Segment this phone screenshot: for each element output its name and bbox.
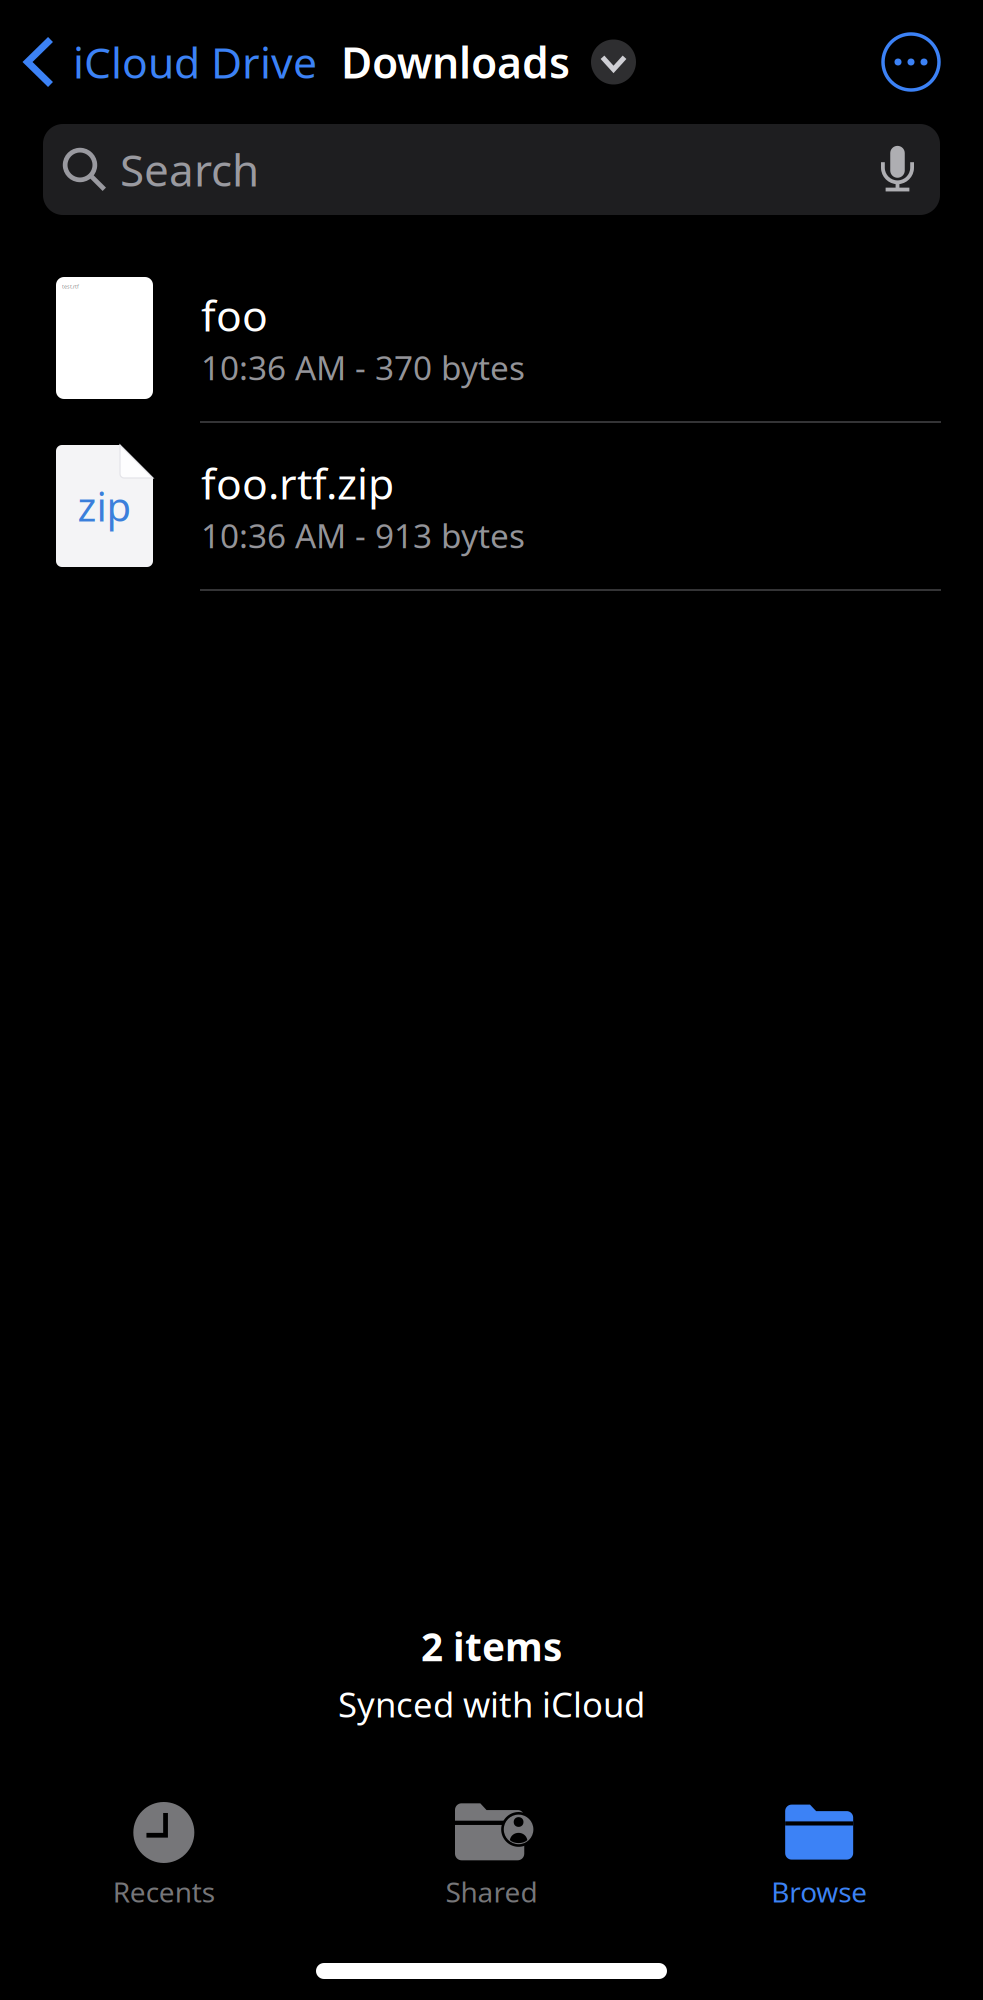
staticText: test.rtf bbox=[62, 283, 79, 290]
staticText: 10:36 AM - 913 bytes bbox=[201, 513, 525, 557]
staticText: Synced with iCloud bbox=[338, 1681, 645, 1727]
staticText: Downloads bbox=[341, 34, 570, 90]
staticText: Browse bbox=[771, 1873, 867, 1910]
staticText: foo.rtf.zip bbox=[201, 454, 394, 511]
button[interactable]: Recents bbox=[0, 1794, 328, 1910]
button[interactable]: iCloud Drive bbox=[0, 16, 317, 108]
button[interactable]: Shared bbox=[328, 1794, 655, 1910]
staticText: Search bbox=[120, 140, 259, 199]
staticText: Shared bbox=[445, 1873, 537, 1910]
staticText: foo bbox=[201, 286, 268, 343]
button[interactable]: Folder actions bbox=[591, 39, 636, 84]
staticText: 2 items bbox=[421, 1621, 562, 1672]
staticText: iCloud Drive bbox=[73, 34, 317, 90]
button[interactable]: More bbox=[883, 34, 939, 90]
button[interactable]: Dictate bbox=[881, 145, 914, 193]
button[interactable]: zip bbox=[0, 423, 983, 591]
staticText: Recents bbox=[113, 1873, 215, 1910]
button[interactable]: Browse bbox=[655, 1794, 983, 1910]
button[interactable]: test.rtf bbox=[0, 255, 983, 423]
staticText: zip bbox=[77, 479, 131, 532]
staticText: 10:36 AM - 370 bytes bbox=[201, 345, 525, 389]
